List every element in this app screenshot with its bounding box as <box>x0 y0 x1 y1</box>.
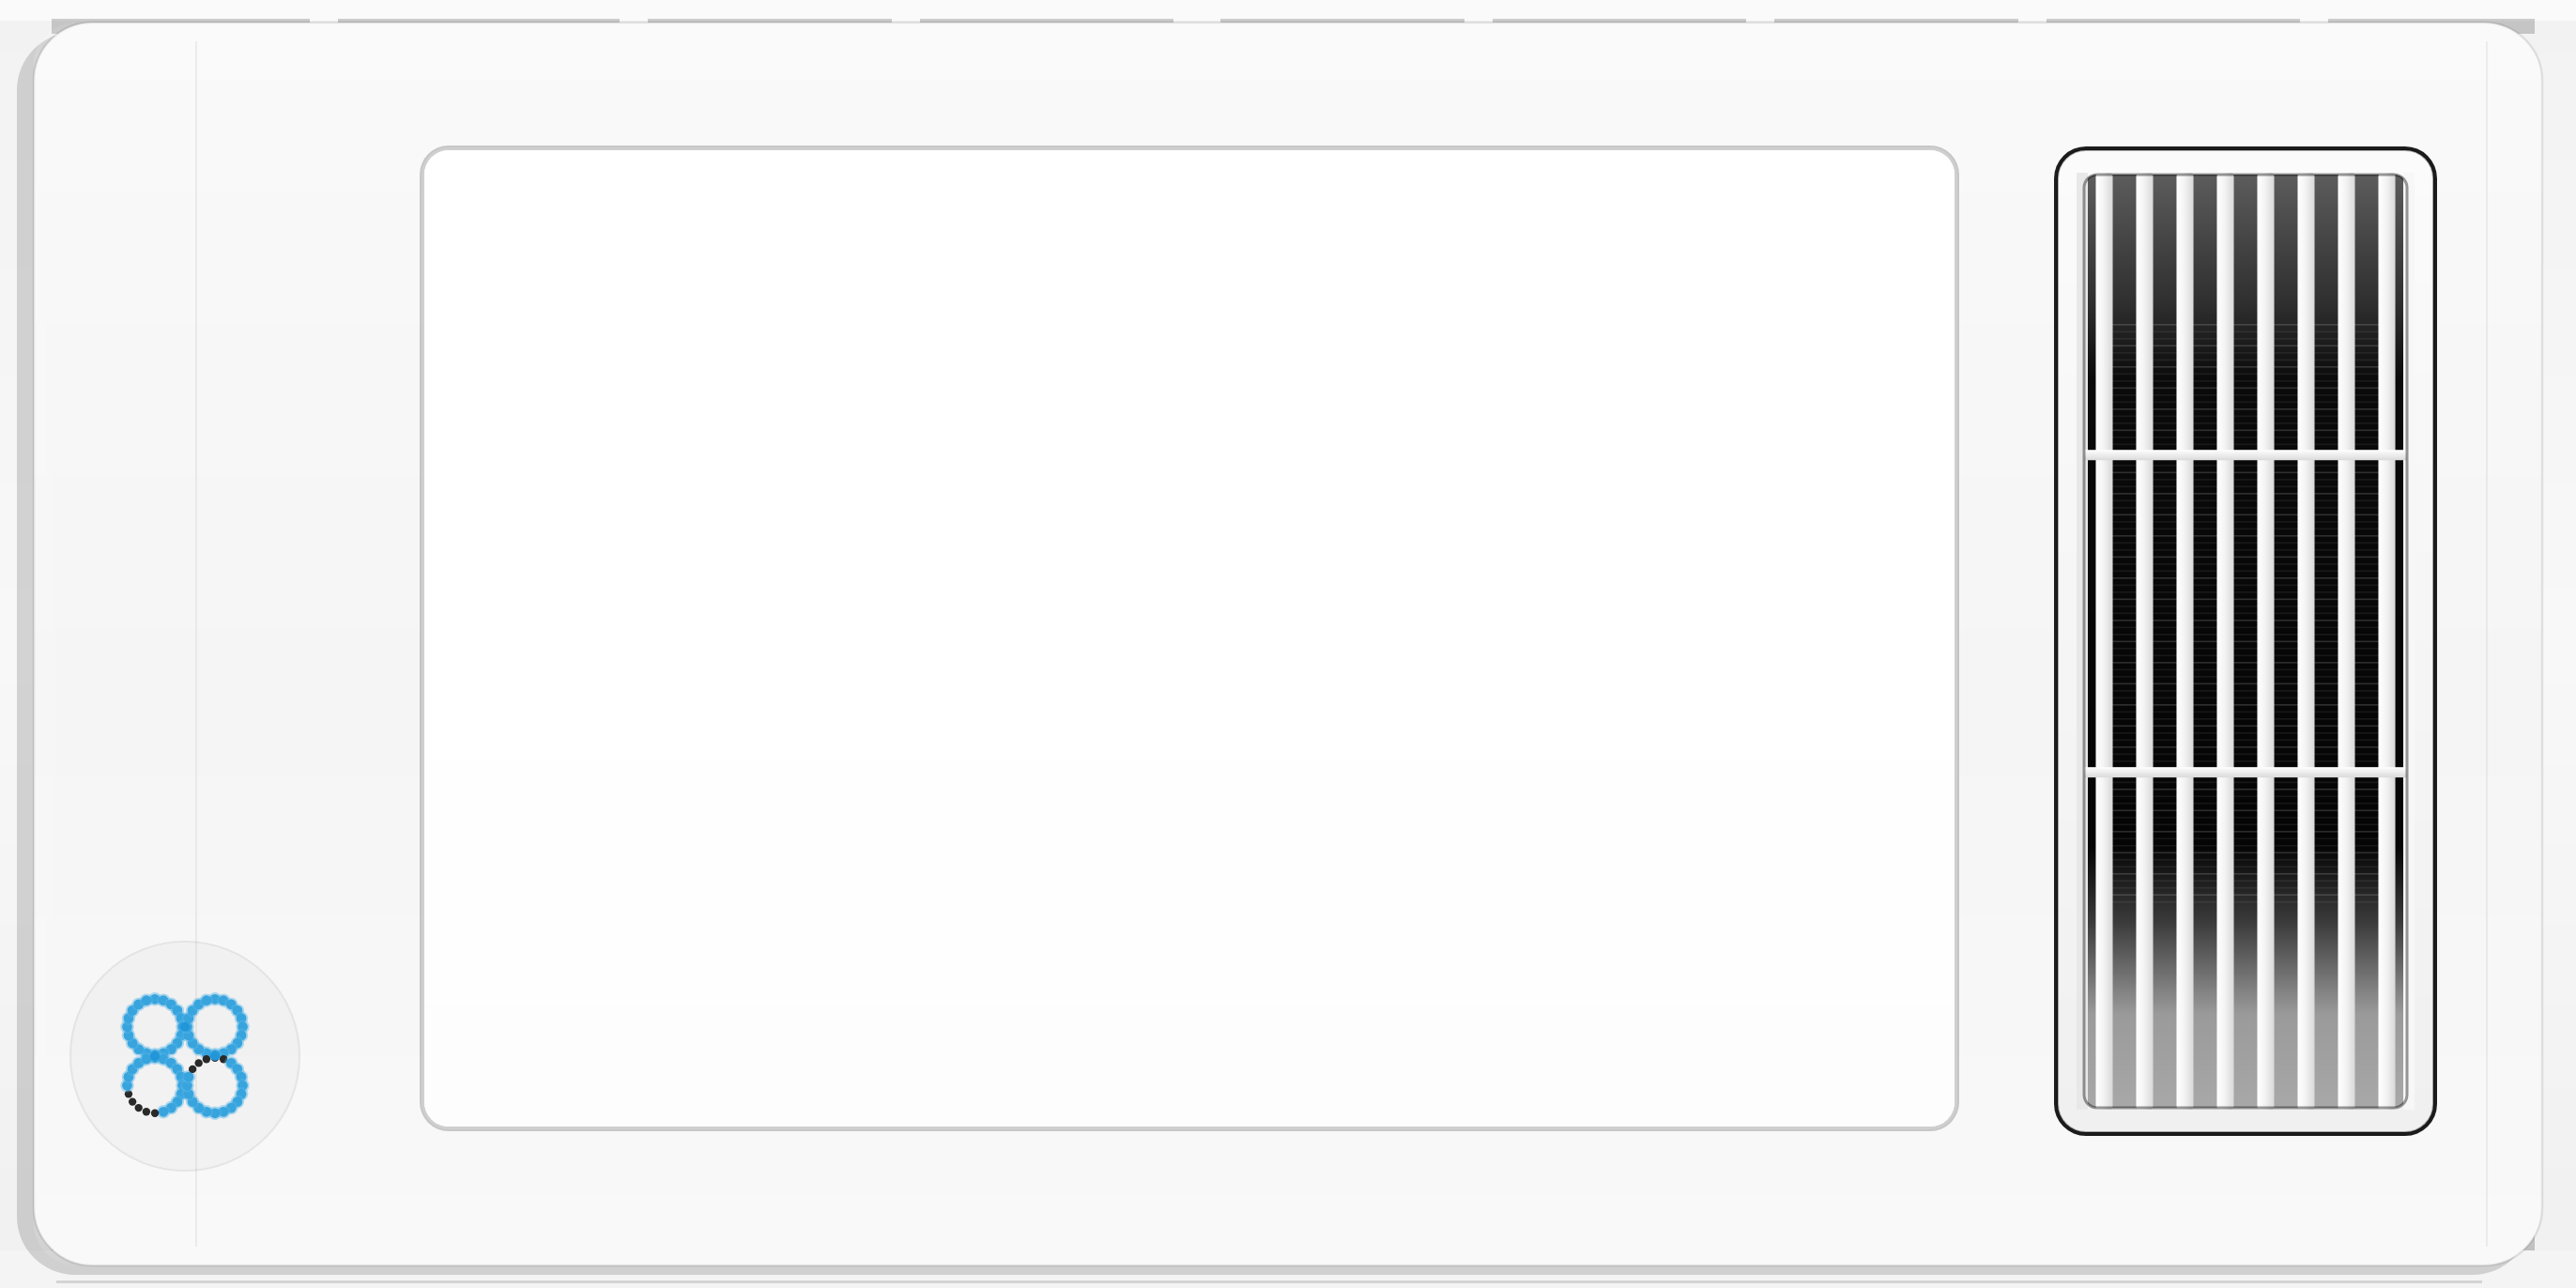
button[interactable]: Mode indicator <box>68 939 302 1173</box>
button[interactable]: Air outlet vent <box>2058 150 2433 1132</box>
